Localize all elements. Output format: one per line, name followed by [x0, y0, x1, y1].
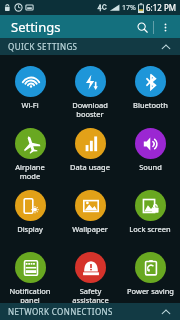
- staticText: Data usage: [70, 162, 110, 172]
- button[interactable]: Display: [0, 185, 60, 234]
- staticText: Wi-Fi: [21, 100, 39, 110]
- staticText: 17%: [122, 3, 136, 13]
- button[interactable]: Lock screen: [120, 185, 180, 234]
- staticText: Bluetooth: [133, 100, 168, 110]
- staticText: Lock screen: [129, 224, 171, 234]
- staticText: Sound: [139, 162, 162, 172]
- button[interactable]: Wi-Fi: [0, 61, 60, 110]
- staticText: 6:12 PM: [146, 2, 177, 13]
- button[interactable]: More options: [154, 16, 176, 38]
- staticText: Notification panel: [9, 286, 51, 303]
- staticText: Wallpaper: [72, 224, 108, 234]
- staticText: Settings: [11, 18, 61, 36]
- button[interactable]: Notification panel: [0, 247, 60, 303]
- staticText: QUICK SETTINGS: [8, 41, 78, 52]
- staticText: Airplane mode: [15, 162, 45, 181]
- button[interactable]: NETWORK CONNECTIONS: [0, 303, 180, 320]
- button[interactable]: Sound: [120, 123, 180, 172]
- staticText: Display: [17, 224, 43, 234]
- button[interactable]: Download booster: [60, 61, 120, 119]
- button[interactable]: Bluetooth: [120, 61, 180, 110]
- button[interactable]: QUICK SETTINGS: [0, 38, 180, 55]
- button[interactable]: Data usage: [60, 123, 120, 172]
- staticText: NETWORK CONNECTIONS: [8, 306, 113, 317]
- staticText: Power saving: [127, 286, 174, 296]
- staticText: Download booster: [72, 100, 108, 119]
- button[interactable]: Power saving: [120, 247, 180, 296]
- staticText: Safety assistance: [72, 286, 109, 303]
- button[interactable]: Safety assistance: [60, 247, 120, 303]
- button[interactable]: Search: [131, 16, 153, 38]
- button[interactable]: Airplane mode: [0, 123, 60, 181]
- button[interactable]: Wallpaper: [60, 185, 120, 234]
